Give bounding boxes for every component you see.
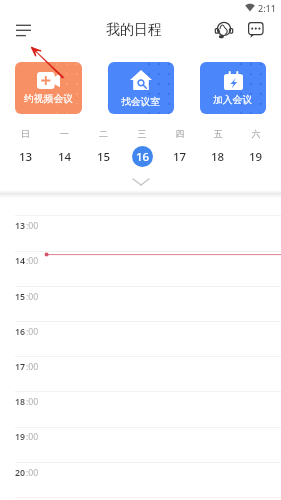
staticText: :00: [26, 326, 39, 338]
staticText: :00: [26, 396, 39, 408]
staticText: 15: [15, 291, 26, 303]
staticText: 一: [45, 128, 84, 139]
button[interactable]: Expand calendar: [0, 172, 281, 192]
staticText: 五: [199, 128, 237, 139]
staticText: 14: [15, 255, 26, 267]
staticText: 19: [249, 149, 263, 165]
staticText: 加入会议: [213, 94, 253, 106]
staticText: :00: [26, 361, 39, 373]
staticText: 13: [19, 149, 33, 165]
staticText: 2:11: [258, 2, 276, 14]
button[interactable]: 16: [123, 146, 161, 167]
staticText: 16: [136, 149, 150, 165]
staticText: 六: [237, 128, 275, 139]
button[interactable]: 18: [199, 146, 237, 167]
staticText: 13: [15, 220, 26, 232]
staticText: :00: [26, 220, 39, 232]
staticText: 18: [211, 149, 225, 165]
button[interactable]: 15: [84, 146, 123, 167]
staticText: 18: [15, 396, 26, 408]
staticText: :00: [26, 291, 39, 303]
staticText: 三: [123, 128, 161, 139]
button[interactable]: 14: [45, 146, 84, 167]
button[interactable]: Customer support: [213, 19, 235, 41]
staticText: :00: [26, 467, 39, 479]
button[interactable]: Menu: [12, 18, 36, 42]
staticText: 20: [15, 467, 26, 479]
staticText: 四: [161, 128, 199, 139]
staticText: 日: [6, 128, 45, 139]
button[interactable]: 找会议室: [108, 62, 174, 114]
staticText: 17: [173, 149, 187, 165]
button[interactable]: 19: [237, 146, 275, 167]
button[interactable]: 加入会议: [200, 62, 266, 114]
staticText: 我的日程: [106, 21, 162, 39]
staticText: 14: [58, 149, 72, 165]
staticText: 找会议室: [121, 96, 161, 108]
button[interactable]: Messages: [245, 19, 267, 41]
staticText: :00: [26, 255, 39, 267]
staticText: 约视频会议: [24, 93, 73, 105]
button[interactable]: 13: [6, 146, 45, 167]
staticText: :00: [26, 431, 39, 443]
staticText: 17: [15, 361, 26, 373]
staticText: 19: [15, 431, 26, 443]
staticText: 16: [15, 326, 26, 338]
staticText: 15: [97, 149, 111, 165]
button[interactable]: 约视频会议: [15, 62, 82, 114]
button[interactable]: 17: [161, 146, 199, 167]
staticText: 二: [84, 128, 123, 139]
